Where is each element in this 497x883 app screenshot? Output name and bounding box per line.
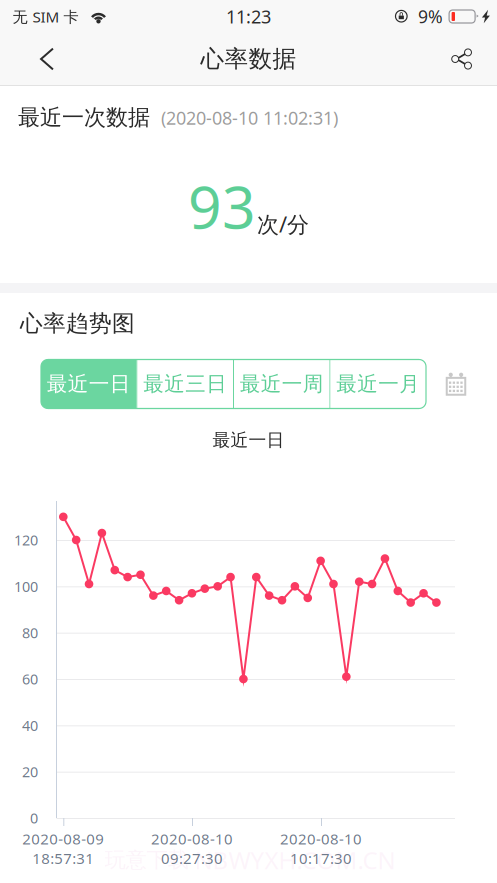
staticText: 0 — [30, 808, 38, 828]
button[interactable]: Back — [0, 33, 94, 85]
button[interactable]: 最近一日 — [41, 359, 136, 408]
staticText: 60 — [22, 669, 38, 689]
staticText: 2020-08-09 — [22, 829, 104, 849]
staticText: 最近一日 — [212, 429, 284, 451]
staticText: 09:27:30 — [161, 848, 223, 868]
staticText: NBWYXH.COM.CN — [194, 844, 395, 876]
staticText: 次/分 — [257, 209, 309, 239]
staticText: 9% — [418, 4, 443, 28]
button[interactable]: 最近一月 — [330, 359, 426, 408]
staticText: 40 — [22, 715, 38, 735]
staticText: 最近三日 — [143, 371, 227, 397]
button[interactable]: 最近三日 — [137, 359, 233, 408]
staticText: 93 — [188, 166, 256, 246]
staticText: (2020-08-10 11:02:31) — [161, 106, 338, 130]
staticText: 心率趋势图 — [20, 309, 135, 338]
staticText: 10:17:30 — [290, 848, 352, 868]
staticText: 100 — [14, 576, 38, 596]
staticText: 2020-08-10 — [280, 829, 362, 849]
staticText: 最近一周 — [240, 371, 324, 397]
staticText: 20 — [22, 762, 38, 781]
button[interactable]: 最近一周 — [234, 359, 329, 408]
staticText: 18:57:31 — [32, 848, 94, 868]
staticText: 最近一月 — [336, 371, 420, 397]
staticText: 80 — [22, 623, 38, 642]
staticText: 玩意下载 — [104, 847, 188, 873]
staticText: 2020-08-10 — [151, 829, 233, 849]
button[interactable]: Share — [427, 33, 497, 85]
staticText: 心率数据 — [200, 44, 296, 74]
staticText: 无 SIM 卡 — [12, 6, 78, 27]
staticText: 最近一日 — [47, 371, 131, 397]
staticText: 120 — [14, 530, 38, 550]
staticText: 最近一次数据 — [18, 104, 150, 131]
button[interactable]: Select date — [436, 364, 476, 404]
staticText: 11:23 — [226, 4, 271, 29]
